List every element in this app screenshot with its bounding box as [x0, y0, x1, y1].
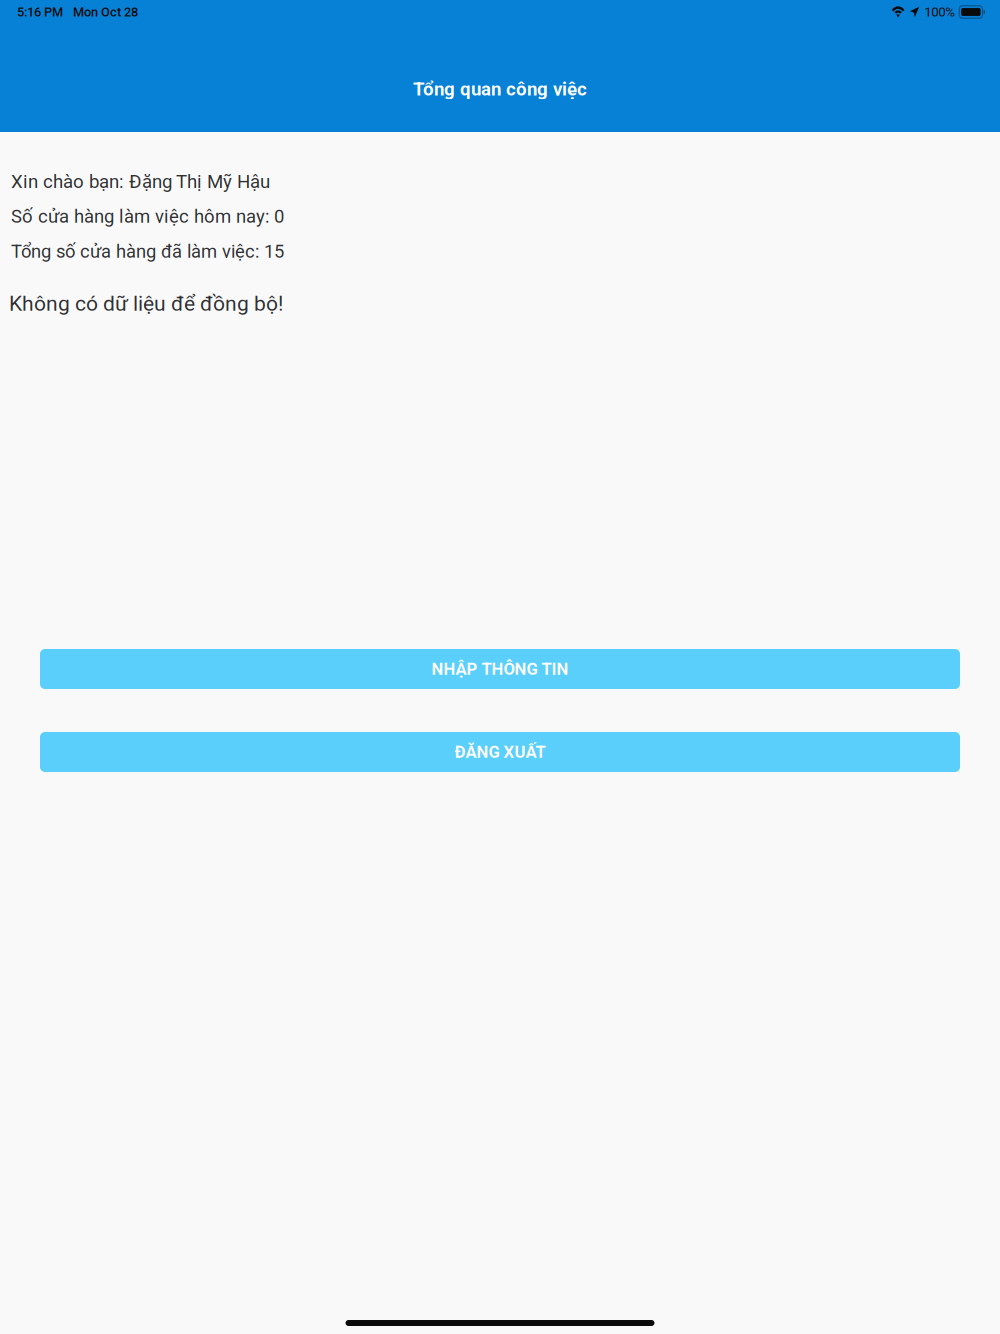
staticText: Mon Oct 28	[73, 4, 138, 19]
staticText: Tổng quan công việc	[413, 78, 587, 100]
staticText: Xin chào bạn: Đặng Thị Mỹ Hậu	[11, 171, 270, 192]
staticText: NHẬP THÔNG TIN	[431, 659, 568, 679]
staticText: Số cửa hàng làm việc hôm nay: 0	[11, 206, 284, 227]
staticText: Tổng số cửa hàng đã làm việc: 15	[11, 241, 284, 262]
staticText: 100%	[924, 4, 955, 20]
button[interactable]: ĐĂNG XUẤT	[40, 732, 960, 772]
staticText: Không có dữ liệu để đồng bộ!	[9, 291, 283, 316]
button[interactable]: NHẬP THÔNG TIN	[40, 649, 960, 689]
staticText: 5:16 PM	[17, 4, 63, 19]
staticText: ĐĂNG XUẤT	[454, 742, 545, 762]
